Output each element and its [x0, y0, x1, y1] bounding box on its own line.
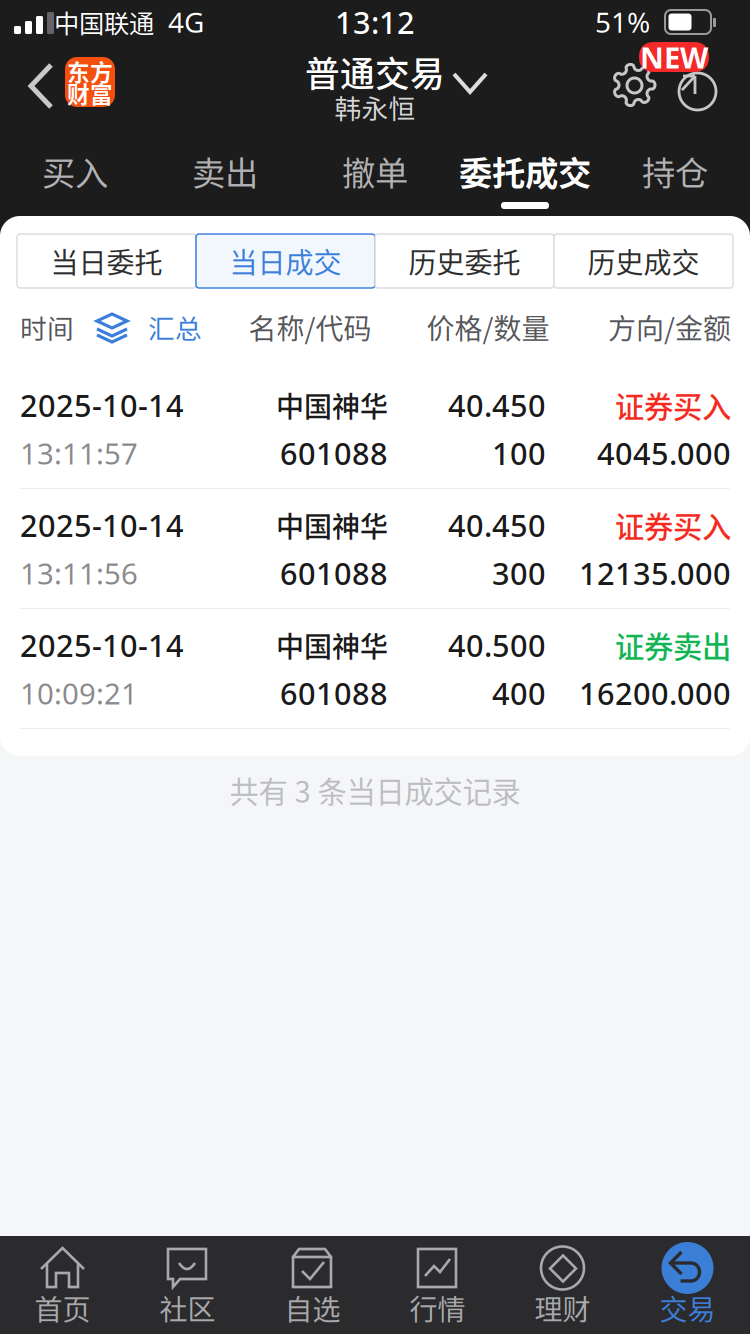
staticText: 2025-10-14 — [20, 624, 184, 666]
button[interactable]: 委托成交 — [450, 140, 600, 216]
staticText: 中国神华 — [276, 505, 388, 545]
button[interactable]: 自选 — [250, 1236, 375, 1334]
staticText: 601088 — [280, 672, 388, 714]
staticText: 韩永恒 — [334, 88, 415, 126]
staticText: 时间 — [20, 308, 74, 346]
button[interactable]: 2025-10-14 — [0, 489, 750, 609]
button[interactable]: 交易 — [625, 1236, 750, 1334]
staticText: 4G — [168, 3, 204, 41]
staticText: 汇总 — [148, 308, 202, 346]
staticText: 证券买入 — [615, 384, 731, 426]
staticText: 名称/代码 — [248, 307, 371, 347]
staticText: 当日委托 — [50, 241, 162, 281]
staticText: 历史成交 — [587, 241, 699, 281]
staticText: 16200.000 — [579, 672, 731, 714]
staticText: 首页 — [34, 1288, 90, 1328]
button[interactable]: Account — [669, 61, 727, 119]
staticText: 中国神华 — [276, 625, 388, 665]
staticText: 100 — [492, 432, 546, 474]
button[interactable]: Back — [24, 61, 58, 111]
staticText: 10:09:21 — [20, 673, 138, 713]
staticText: 40.450 — [448, 384, 546, 426]
staticText: 2025-10-14 — [20, 504, 184, 546]
staticText: 价格/数量 — [426, 307, 549, 347]
button[interactable]: 理财 — [500, 1236, 625, 1334]
button[interactable]: 2025-10-14 — [0, 609, 750, 729]
staticText: 东方 — [67, 55, 113, 87]
staticText: 自选 — [284, 1288, 340, 1328]
button[interactable]: 当日委托 — [17, 234, 196, 288]
button[interactable]: Settings — [609, 60, 667, 118]
button[interactable]: 行情 — [375, 1236, 500, 1334]
staticText: 2025-10-14 — [20, 384, 184, 426]
staticText: 601088 — [280, 552, 388, 594]
staticText: 社区 — [159, 1288, 215, 1328]
staticText: 行情 — [409, 1288, 465, 1328]
staticText: NEW — [640, 37, 708, 77]
button[interactable]: 首页 — [0, 1236, 125, 1334]
button[interactable]: 社区 — [125, 1236, 250, 1334]
staticText: 共有 3 条当日成交记录 — [229, 769, 520, 811]
staticText: 中国联通 — [54, 4, 154, 40]
staticText: 40.500 — [448, 624, 546, 666]
staticText: 持仓 — [642, 147, 708, 195]
staticText: 51% — [595, 3, 650, 41]
button[interactable]: 卖出 — [150, 140, 300, 216]
staticText: 13:12 — [335, 1, 415, 43]
staticText: 方向/金额 — [608, 307, 731, 347]
button[interactable]: 撤单 — [300, 140, 450, 216]
staticText: 300 — [492, 552, 546, 594]
staticText: 13:11:56 — [20, 553, 138, 593]
staticText: 13:11:57 — [20, 433, 138, 473]
button[interactable]: 东方财富 — [65, 57, 115, 107]
staticText: 400 — [492, 672, 546, 714]
staticText: 601088 — [280, 432, 388, 474]
staticText: 4045.000 — [597, 432, 731, 474]
staticText: 证券卖出 — [615, 624, 731, 666]
staticText: 12135.000 — [579, 552, 731, 594]
button[interactable]: 买入 — [0, 140, 150, 216]
button[interactable]: 历史委托 — [375, 234, 554, 288]
staticText: 历史委托 — [408, 241, 520, 281]
staticText: 普通交易 — [305, 47, 445, 97]
button[interactable]: 2025-10-14 — [0, 369, 750, 489]
button[interactable]: 当日成交 — [196, 234, 375, 288]
button[interactable]: 持仓 — [600, 140, 750, 216]
staticText: 买入 — [42, 147, 108, 195]
staticText: 当日成交 — [229, 241, 341, 281]
staticText: 中国神华 — [276, 385, 388, 425]
staticText: 40.450 — [448, 504, 546, 546]
button[interactable]: 汇总 — [148, 306, 218, 348]
staticText: 卖出 — [192, 147, 258, 195]
staticText: 理财 — [534, 1288, 590, 1328]
staticText: 财富 — [67, 77, 113, 109]
staticText: 委托成交 — [459, 147, 591, 195]
staticText: 撤单 — [342, 147, 408, 195]
staticText: 证券买入 — [615, 504, 731, 546]
staticText: 交易 — [659, 1288, 715, 1328]
button[interactable]: 历史成交 — [554, 234, 733, 288]
